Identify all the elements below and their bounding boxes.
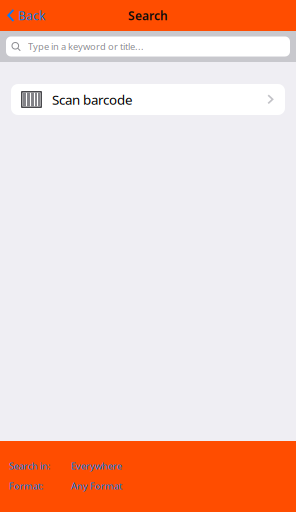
staticText: Format:: [9, 480, 44, 492]
button[interactable]: Back: [0, 0, 53, 31]
button[interactable]: Scan barcode: [11, 84, 285, 115]
staticText: Any Format: [71, 480, 122, 492]
button[interactable]: Type in a keyword or title...: [6, 36, 290, 56]
staticText: Search: [128, 7, 168, 23]
staticText: Search in:: [9, 460, 51, 472]
staticText: Type in a keyword or title...: [28, 40, 144, 53]
button[interactable]: Any Format: [71, 480, 122, 492]
staticText: Scan barcode: [52, 91, 133, 108]
staticText: Everywhere: [71, 460, 122, 472]
button[interactable]: Everywhere: [71, 460, 122, 472]
staticText: Back: [18, 7, 45, 23]
